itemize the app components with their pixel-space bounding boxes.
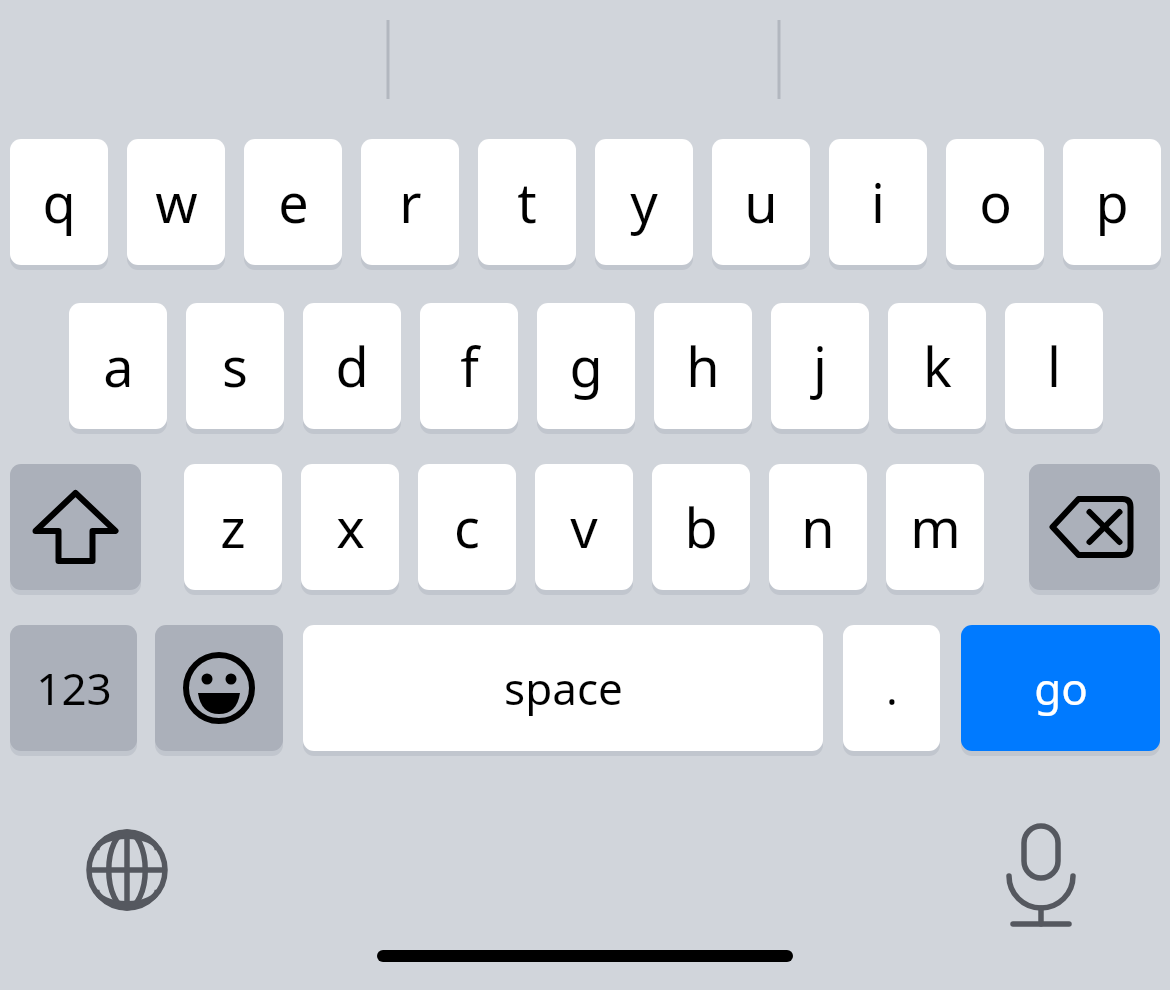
button[interactable]: Dictation: [993, 820, 1089, 916]
button[interactable]: l: [1005, 303, 1103, 429]
button[interactable]: Emoji: [155, 625, 283, 751]
staticText: i: [871, 165, 885, 239]
button[interactable]: w: [127, 139, 225, 265]
staticText: n: [801, 490, 835, 564]
staticText: go: [1034, 658, 1088, 718]
button[interactable]: c: [418, 464, 516, 590]
staticText: a: [103, 329, 134, 403]
staticText: space: [504, 658, 623, 718]
button[interactable]: go: [961, 625, 1160, 751]
staticText: s: [222, 329, 248, 403]
staticText: 123: [36, 658, 112, 718]
staticText: l: [1047, 329, 1061, 403]
button[interactable]: p: [1063, 139, 1161, 265]
button[interactable]: t: [478, 139, 576, 265]
staticText: c: [454, 490, 480, 564]
staticText: x: [336, 490, 365, 564]
button[interactable]: o: [946, 139, 1044, 265]
button[interactable]: i: [829, 139, 927, 265]
staticText: f: [460, 329, 479, 403]
button[interactable]: h: [654, 303, 752, 429]
button[interactable]: g: [537, 303, 635, 429]
button[interactable]: b: [652, 464, 750, 590]
button[interactable]: v: [535, 464, 633, 590]
button[interactable]: Change keyboard: [79, 822, 175, 918]
button[interactable]: 123: [10, 625, 137, 751]
button[interactable]: y: [595, 139, 693, 265]
staticText: p: [1095, 165, 1129, 239]
button[interactable]: .: [843, 625, 940, 751]
staticText: d: [335, 329, 369, 403]
button[interactable]: a: [69, 303, 167, 429]
button[interactable]: space: [303, 625, 823, 751]
staticText: k: [923, 329, 952, 403]
staticText: q: [42, 165, 76, 239]
staticText: b: [684, 490, 718, 564]
button[interactable]: d: [303, 303, 401, 429]
staticText: j: [813, 329, 827, 403]
staticText: v: [570, 490, 598, 564]
button[interactable]: u: [712, 139, 810, 265]
staticText: t: [517, 165, 537, 239]
button[interactable]: k: [888, 303, 986, 429]
button[interactable]: r: [361, 139, 459, 265]
button[interactable]: Backspace: [1029, 464, 1160, 590]
button[interactable]: m: [886, 464, 984, 590]
button[interactable]: q: [10, 139, 108, 265]
button[interactable]: Shift: [10, 464, 141, 590]
button[interactable]: x: [301, 464, 399, 590]
button[interactable]: z: [184, 464, 282, 590]
button[interactable]: n: [769, 464, 867, 590]
button[interactable]: s: [186, 303, 284, 429]
staticText: h: [686, 329, 720, 403]
button[interactable]: j: [771, 303, 869, 429]
button[interactable]: f: [420, 303, 518, 429]
staticText: m: [910, 490, 961, 564]
staticText: z: [220, 490, 246, 564]
staticText: o: [979, 165, 1012, 239]
staticText: y: [630, 165, 658, 239]
staticText: u: [744, 165, 778, 239]
staticText: g: [569, 329, 603, 403]
staticText: .: [886, 658, 898, 718]
staticText: e: [278, 165, 309, 239]
staticText: w: [155, 165, 198, 239]
button[interactable]: e: [244, 139, 342, 265]
staticText: r: [399, 165, 422, 239]
